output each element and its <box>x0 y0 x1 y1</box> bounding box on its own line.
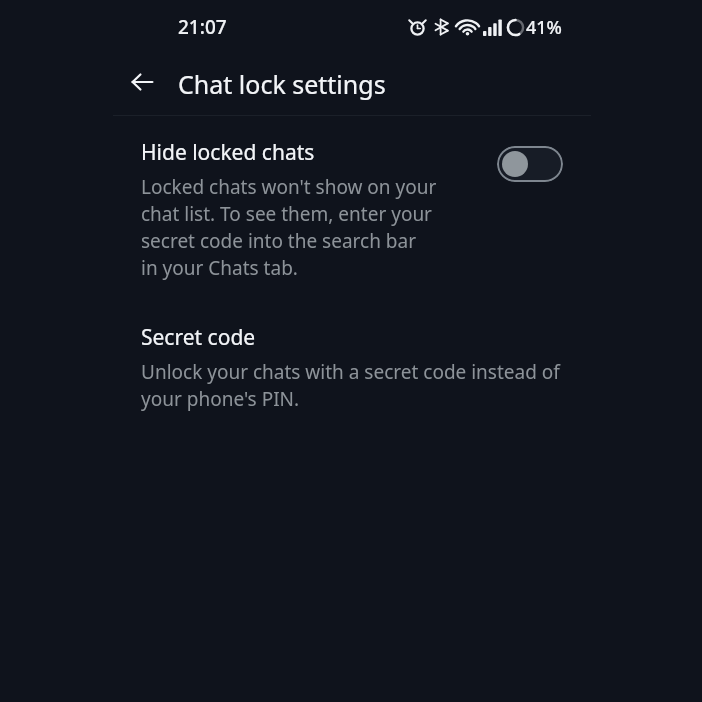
staticText: Unlock your chats with a secret code ins… <box>141 359 561 412</box>
staticText: Locked chats won't show on your chat lis… <box>141 174 437 281</box>
staticText: Chat lock settings <box>178 67 386 101</box>
button[interactable]: Hide locked chats <box>0 138 702 281</box>
button[interactable]: Back <box>118 58 166 106</box>
staticText: 21:07 <box>178 14 227 40</box>
button[interactable]: Secret code <box>0 323 702 412</box>
staticText: Secret code <box>141 323 256 352</box>
staticText: 41% <box>526 15 562 40</box>
button[interactable]: Hide locked chats toggle, off <box>489 142 571 186</box>
staticText: Hide locked chats <box>141 138 315 167</box>
